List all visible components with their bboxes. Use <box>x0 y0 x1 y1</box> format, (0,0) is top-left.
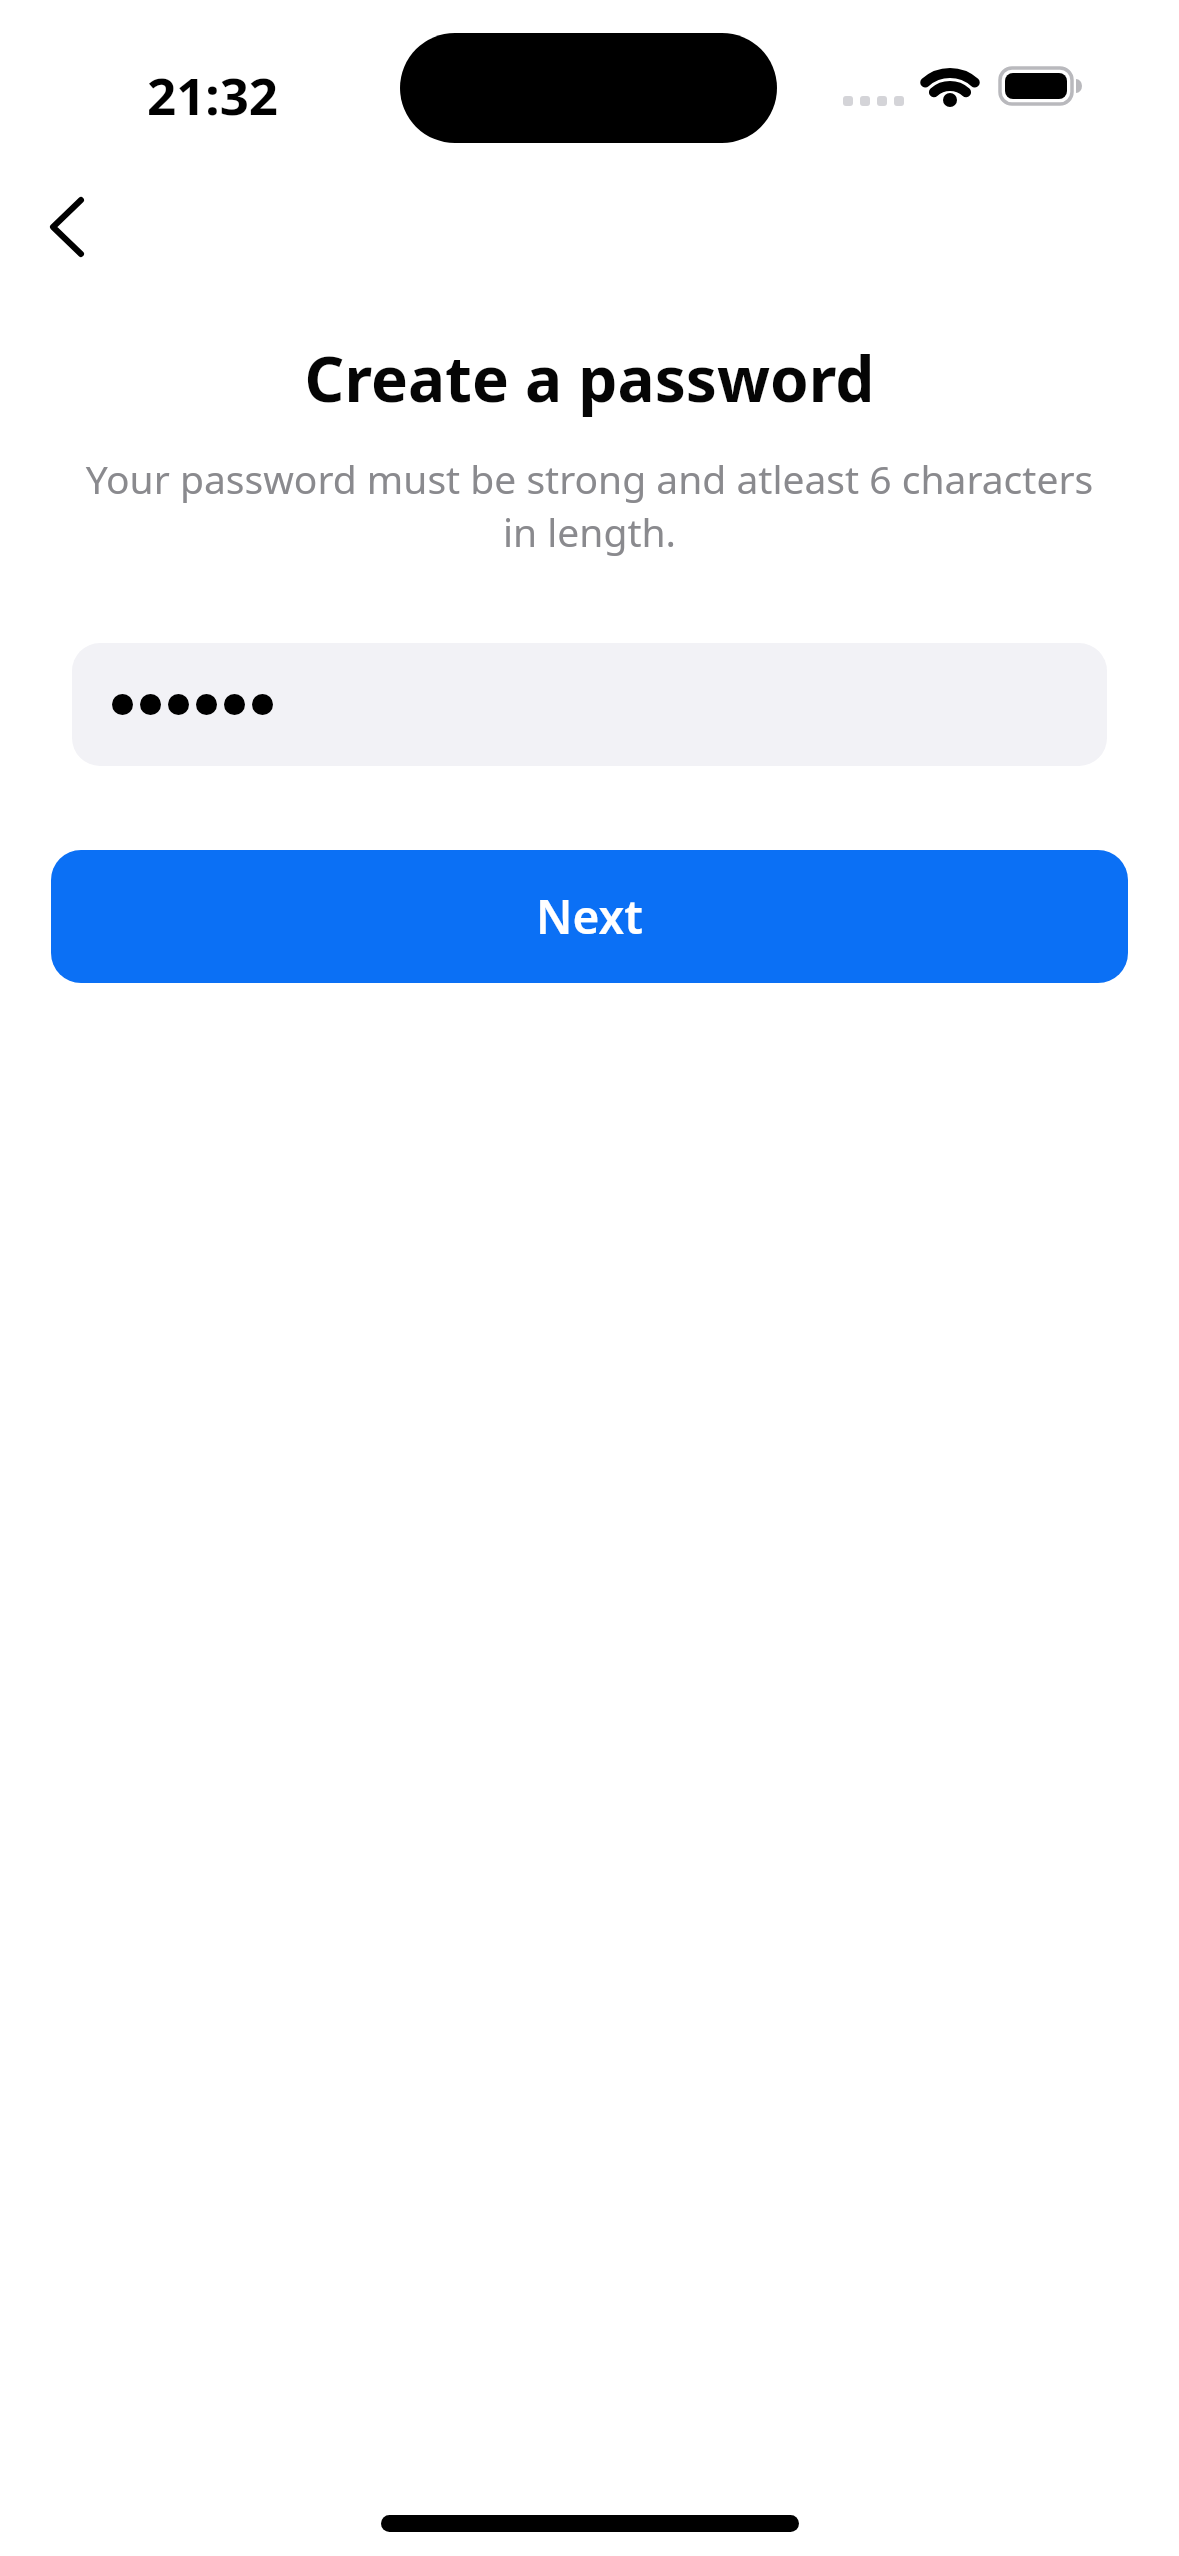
staticText: 21:32 <box>147 60 279 129</box>
staticText: Create a password <box>0 336 1179 420</box>
button[interactable]: Next <box>51 850 1128 983</box>
button[interactable] <box>20 180 116 276</box>
staticText: Your password must be strong and atleast… <box>0 452 1179 559</box>
button[interactable] <box>72 643 1107 766</box>
staticText: Next <box>536 885 643 948</box>
